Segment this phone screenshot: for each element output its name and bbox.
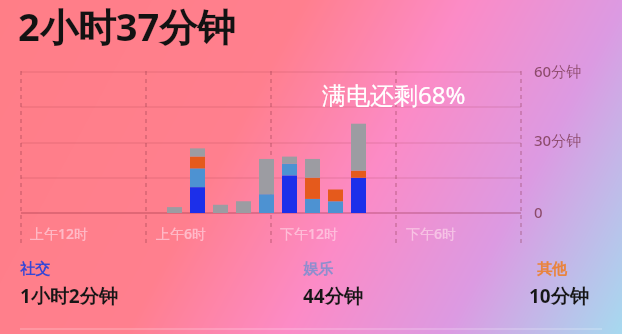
button[interactable]: Screen time summary: [0, 0, 622, 334]
